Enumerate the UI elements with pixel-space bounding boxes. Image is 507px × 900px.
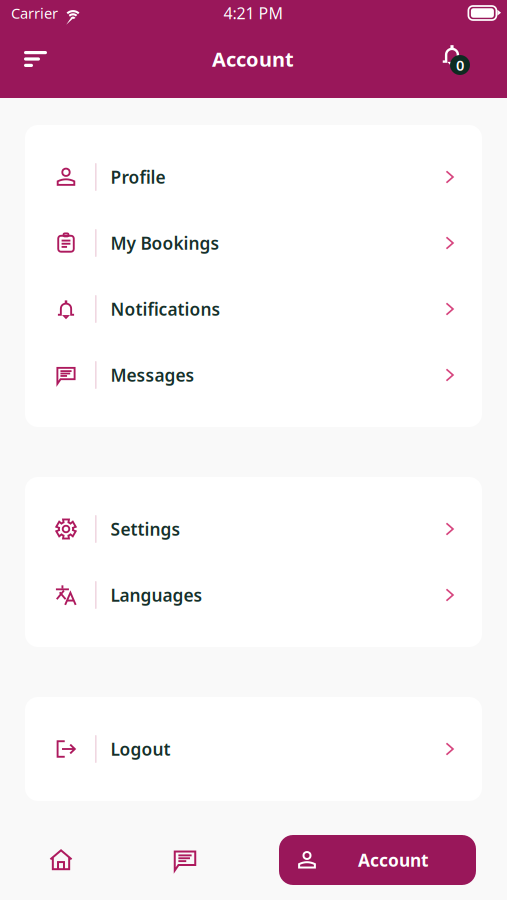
staticText: Account <box>212 46 294 72</box>
button[interactable]: Notifications <box>25 276 482 342</box>
button[interactable]: Messages <box>154 829 216 891</box>
staticText: 4:21 PM <box>223 2 283 24</box>
staticText: Notifications <box>111 297 221 320</box>
button[interactable]: Notifications <box>440 36 474 82</box>
staticText: Logout <box>111 737 171 760</box>
button[interactable]: Messages <box>25 342 482 408</box>
button[interactable]: Home <box>30 829 92 891</box>
staticText: Profile <box>111 165 166 188</box>
button[interactable]: My Bookings <box>25 210 482 276</box>
button[interactable]: Account <box>279 835 476 885</box>
button[interactable]: Menu <box>24 36 66 82</box>
staticText: Settings <box>111 517 181 540</box>
button[interactable]: Settings <box>25 496 482 562</box>
button[interactable]: Profile <box>25 144 482 210</box>
staticText: Messages <box>111 363 195 386</box>
staticText: 0 <box>456 55 464 75</box>
button[interactable]: Logout <box>25 716 482 782</box>
staticText: Languages <box>111 583 203 606</box>
staticText: Carrier <box>11 3 58 23</box>
staticText: My Bookings <box>111 231 220 254</box>
button[interactable]: Languages <box>25 562 482 628</box>
staticText: Account <box>358 848 429 871</box>
